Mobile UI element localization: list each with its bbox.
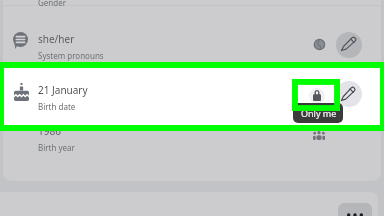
button[interactable]: Edit birth date — [336, 81, 362, 107]
staticText: System pronouns — [38, 50, 104, 61]
staticText: Gender — [38, 0, 67, 8]
button[interactable]: Edit pronouns — [336, 32, 362, 58]
staticText: she/her — [38, 32, 75, 46]
button[interactable]: 1986 — [0, 120, 384, 175]
staticText: Birth year — [38, 142, 75, 153]
staticText: Only me — [301, 107, 337, 119]
staticText: 21 January — [38, 83, 88, 97]
staticText: Birth date — [38, 101, 76, 112]
button[interactable] — [4, 68, 380, 125]
staticText: 1986 — [38, 124, 61, 138]
button[interactable]: she/her — [0, 6, 384, 62]
button[interactable]: More options — [338, 203, 372, 216]
